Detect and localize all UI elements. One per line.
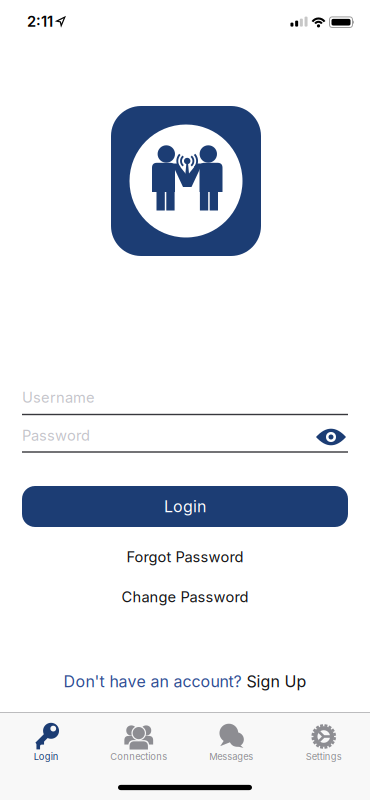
button[interactable]: Show password [316,427,346,447]
staticText: 2:11 [27,13,53,30]
button[interactable]: Settings [278,712,370,770]
button[interactable]: Forgot Password [126,548,243,566]
button[interactable]: Change Password [121,588,248,606]
staticText: Username [22,389,95,406]
staticText: Messages [209,751,253,762]
staticText: Don't have an account? [63,672,241,691]
staticText: Forgot Password [126,548,243,566]
staticText: Sign Up [246,672,306,691]
staticText: Change Password [121,588,248,606]
button[interactable]: Login [22,486,348,527]
staticText: Login [34,751,59,762]
staticText: Connections [110,751,167,762]
button[interactable]: Login [0,712,92,770]
button[interactable]: Connections [93,712,185,770]
staticText: Settings [306,751,342,762]
button[interactable]: Messages [185,712,277,770]
button[interactable]: Don't have an account? [63,672,306,691]
staticText: Login [164,497,206,516]
staticText: Password [22,427,90,444]
